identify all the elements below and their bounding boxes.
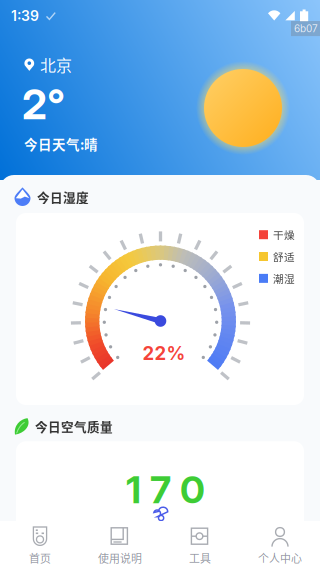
staticText: 22% [142, 342, 185, 364]
staticText: 首页 [29, 550, 51, 566]
staticText: 170 [126, 466, 205, 512]
button[interactable]: 个人中心 [240, 521, 320, 569]
staticText: 舒适 [273, 249, 295, 264]
staticText: 个人中心 [258, 550, 302, 566]
staticText: 6b07 [294, 22, 318, 35]
staticText: 2° [22, 79, 65, 129]
button[interactable]: 首页 [0, 521, 80, 569]
button[interactable]: 使用说明 [80, 521, 160, 569]
staticText: 使用说明 [98, 550, 142, 566]
staticText: 干燥 [273, 227, 295, 242]
staticText: 北京 [40, 53, 72, 76]
staticText: 工具 [189, 550, 211, 566]
staticText: 潮湿 [273, 271, 295, 286]
staticText: 今日湿度 [37, 188, 89, 206]
button[interactable]: 工具 [160, 521, 240, 569]
staticText: 1:39 [11, 7, 39, 24]
staticText: 今日天气:晴 [24, 134, 98, 153]
staticText: 今日空气质量 [35, 417, 113, 435]
